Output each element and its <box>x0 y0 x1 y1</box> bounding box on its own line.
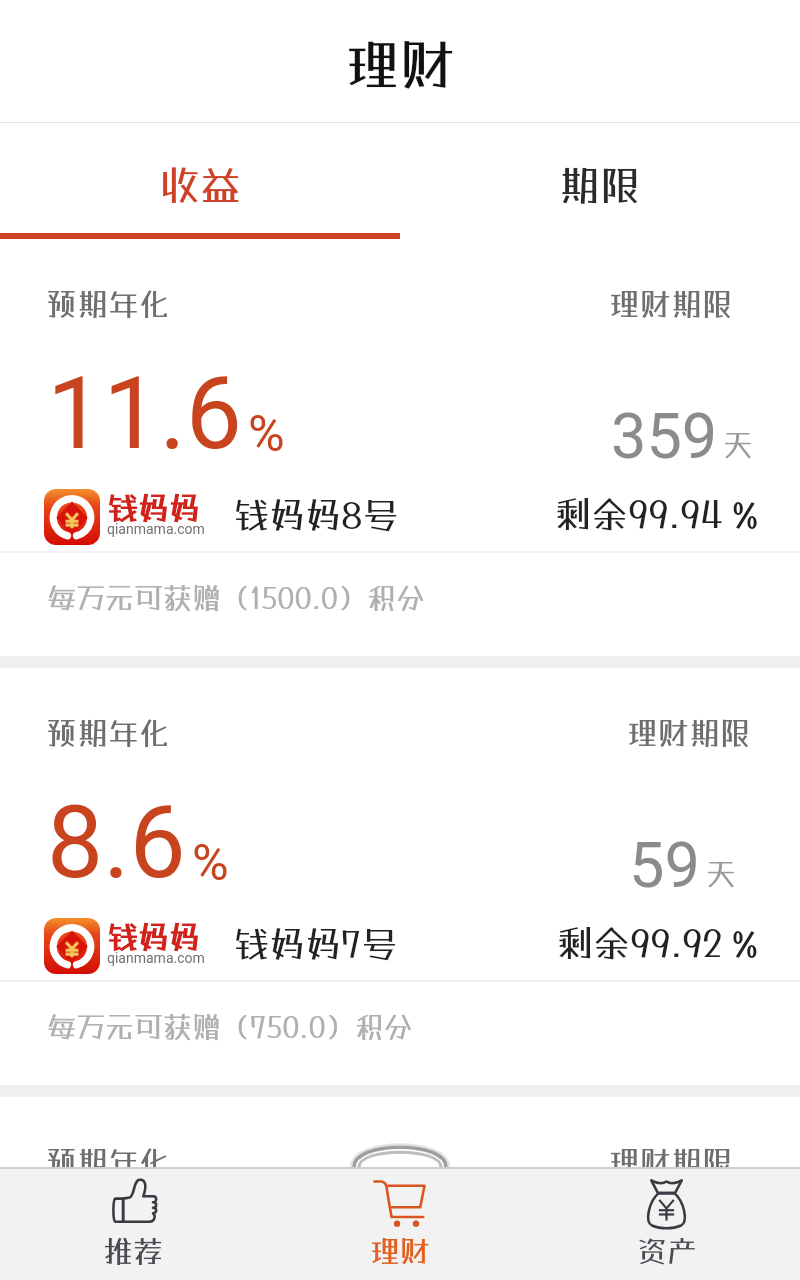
button[interactable]: 期限 <box>400 123 800 171</box>
button[interactable]: Recommend <box>0 1167 266 1280</box>
staticText: 预期年化 <box>46 1144 170 1181</box>
staticText: 收益 <box>159 161 241 209</box>
button[interactable]: 预期年化 <box>0 1103 800 1280</box>
staticText: 理财期限 <box>609 1144 733 1181</box>
staticText: 钱妈妈 <box>107 919 200 956</box>
button[interactable]: Wealth <box>266 1167 533 1280</box>
button[interactable]: 预期年化 <box>0 674 800 1085</box>
staticText: 119 <box>611 1258 718 1280</box>
staticText: 理财期限 <box>609 286 733 323</box>
staticText: 理财期限 <box>627 715 751 752</box>
button[interactable]: 预期年化 <box>0 245 800 656</box>
staticText: 剩余99.92 % <box>556 921 759 965</box>
staticText: 9.8 <box>47 1213 186 1280</box>
staticText: 理财 <box>370 1234 430 1269</box>
staticText: % <box>192 834 229 893</box>
staticText: qianmama.com <box>107 521 205 537</box>
staticText: 钱妈妈 <box>107 490 200 527</box>
staticText: qianmama.com <box>107 950 205 966</box>
staticText: 资产 <box>637 1234 697 1269</box>
staticText: 钱妈妈8号 <box>233 494 399 536</box>
staticText: 每万元可获赠（1500.0）积分 <box>47 581 425 615</box>
staticText: 天 <box>723 427 753 462</box>
button[interactable]: 收益 <box>0 123 400 171</box>
staticText: 钱妈妈7号 <box>233 923 398 965</box>
staticText: 推荐 <box>103 1234 163 1269</box>
staticText: 预期年化 <box>46 286 170 323</box>
staticText: 期限 <box>559 161 641 209</box>
staticText: 59 <box>629 829 700 903</box>
staticText: 预期年化 <box>46 715 170 752</box>
staticText: % <box>248 405 285 464</box>
staticText: 剩余99.94 % <box>554 492 759 536</box>
staticText: 天 <box>706 856 736 891</box>
staticText: 每万元可获赠（750.0）积分 <box>47 1010 413 1044</box>
button[interactable]: Assets <box>533 1167 800 1280</box>
staticText: 理财 <box>345 32 456 97</box>
staticText: 8.6 <box>47 784 186 901</box>
staticText: 11.6 <box>47 355 242 472</box>
staticText: 359 <box>611 400 718 474</box>
